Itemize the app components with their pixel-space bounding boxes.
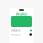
staticText: Balance (11, 29, 21, 32)
staticText: Recent (11, 33, 21, 36)
staticText: Wallet (15, 11, 27, 17)
